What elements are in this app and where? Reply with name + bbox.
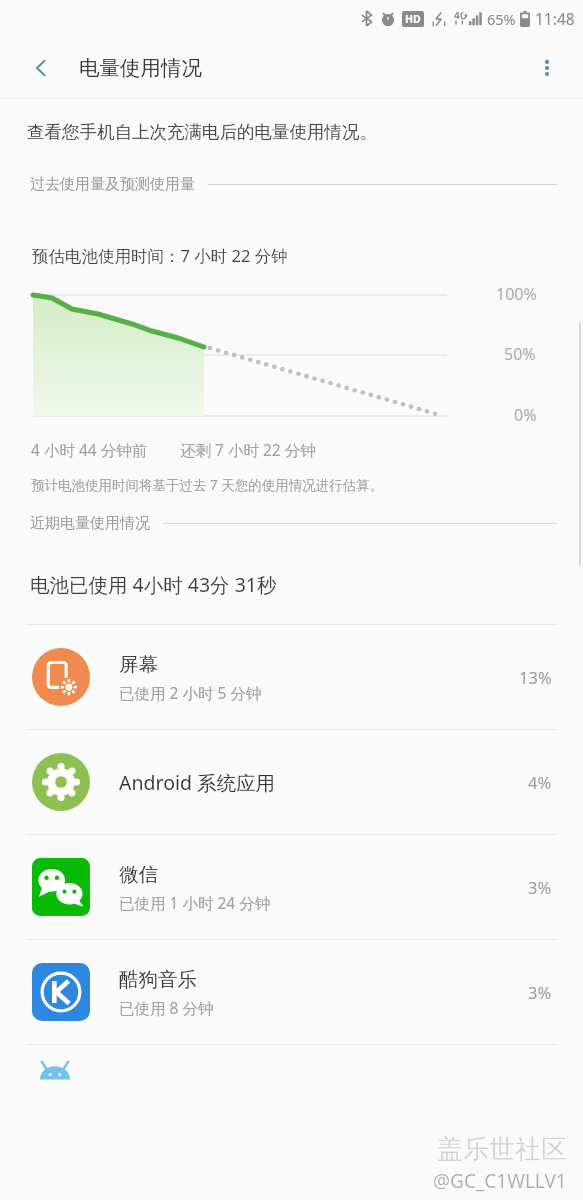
staticText: 4%: [528, 771, 552, 793]
staticText: 微信: [119, 862, 158, 887]
staticText: 盖乐世社区: [437, 1133, 567, 1166]
staticText: 预计电池使用时间将基于过去 7 天您的使用情况进行估算。: [31, 476, 384, 494]
staticText: 过去使用量及预测使用量: [30, 175, 195, 194]
staticText: 电量使用情况: [79, 55, 202, 81]
button[interactable]: 屏幕: [0, 625, 583, 729]
staticText: 近期电量使用情况: [30, 514, 150, 533]
staticText: 50%: [504, 343, 536, 365]
staticText: 11:48: [535, 8, 575, 29]
staticText: 电池已使用 4小时 43分 31秒: [30, 571, 277, 598]
staticText: 还剩 7 小时 22 分钟: [180, 439, 316, 460]
button[interactable]: 酷狗音乐: [0, 940, 583, 1044]
staticText: 3%: [528, 876, 552, 898]
staticText: 13%: [519, 666, 552, 688]
staticText: 查看您手机自上次充满电后的电量使用情况。: [27, 121, 377, 143]
staticText: 65%: [487, 9, 516, 29]
staticText: 100%: [496, 283, 537, 305]
staticText: Android 系统应用: [119, 769, 276, 796]
staticText: 3%: [528, 981, 552, 1003]
button[interactable]: More options: [525, 46, 569, 90]
staticText: 屏幕: [119, 652, 158, 677]
staticText: 已使用 8 分钟: [119, 997, 214, 1018]
staticText: 酷狗音乐: [119, 967, 197, 992]
staticText: 预估电池使用时间：7 小时 22 分钟: [32, 244, 288, 267]
staticText: @GC_C1WLLV1: [433, 1168, 567, 1194]
staticText: 0%: [514, 404, 537, 426]
button[interactable]: Android 系统应用: [0, 730, 583, 834]
staticText: 已使用 1 小时 24 分钟: [119, 892, 271, 913]
staticText: 4 小时 44 分钟前: [31, 439, 148, 460]
button[interactable]: 微信: [0, 835, 583, 939]
staticText: HD: [405, 12, 421, 26]
staticText: 已使用 2 小时 5 分钟: [119, 682, 262, 703]
button[interactable]: Back: [18, 45, 64, 91]
